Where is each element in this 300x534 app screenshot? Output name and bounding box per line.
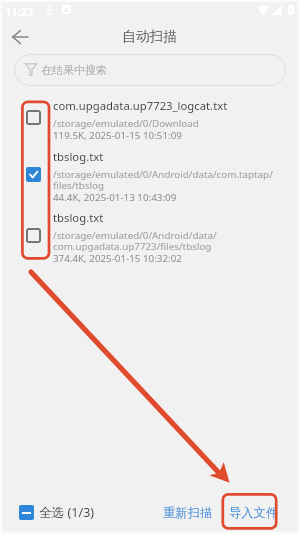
button[interactable]: 导入文件 — [222, 498, 286, 527]
staticText: tbslog.txt — [53, 149, 104, 164]
button[interactable]: tbslog.txt — [0, 204, 300, 266]
staticText: 重新扫描 — [163, 505, 213, 520]
staticText: 374.4K, 2025-01-15 10:32:02 — [53, 252, 182, 265]
staticText: /storage/emulated/0/Download — [53, 117, 199, 130]
staticText: /storage/emulated/0/Android/data/ — [53, 229, 217, 242]
staticText: 全选 (1/3) — [39, 504, 95, 521]
staticText: com.upgadata.up7723_logcat.txt — [53, 98, 228, 113]
staticText: 44.4K, 2025-01-13 10:43:09 — [53, 191, 177, 204]
staticText: 导入文件 — [229, 505, 279, 520]
staticText: 自动扫描 — [122, 28, 178, 45]
button[interactable]: 在结果中搜索 — [14, 54, 286, 86]
button[interactable]: tbslog.txt — [0, 143, 300, 205]
button[interactable]: com.upgadata.up7723_logcat.txt — [0, 92, 300, 143]
staticText: com.upgadata.up7723/files/tbslog — [53, 240, 212, 253]
staticText: 11:22 — [5, 4, 34, 19]
button[interactable]: 重新扫描 — [156, 498, 220, 527]
staticText: 在结果中搜索 — [41, 63, 107, 77]
staticText: /storage/emulated/0/Android/data/com.tap… — [53, 168, 273, 181]
staticText: tbslog.txt — [53, 210, 104, 225]
button[interactable]: 全选 (1/3) — [12, 498, 102, 527]
button[interactable]: Back — [6, 23, 34, 51]
staticText: files/tbslog — [53, 179, 105, 192]
staticText: 119.5K, 2025-01-15 10:51:09 — [53, 129, 182, 142]
